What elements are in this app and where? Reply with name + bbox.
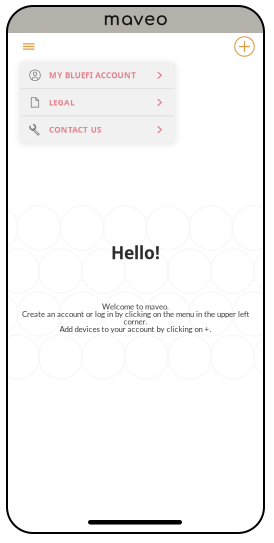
staticText: CONTACT US: [49, 124, 101, 135]
staticText: MY BLUEFI ACCOUNT: [49, 70, 136, 80]
staticText: Add devices to your account by clicking …: [59, 324, 211, 334]
staticText: Hello!: [111, 241, 160, 264]
staticText: corner.: [123, 317, 147, 326]
button[interactable]: Menu: [18, 38, 39, 55]
button[interactable]: CONTACT US: [20, 116, 175, 143]
button[interactable]: LEGAL: [20, 89, 175, 116]
staticText: Welcome to maveo.: [102, 302, 169, 311]
staticText: maveo: [103, 9, 168, 30]
staticText: LEGAL: [49, 97, 74, 108]
button[interactable]: Add device: [232, 34, 257, 59]
button[interactable]: MY BLUEFI ACCOUNT: [20, 62, 175, 88]
staticText: Create an account or log in by clicking …: [22, 309, 249, 319]
